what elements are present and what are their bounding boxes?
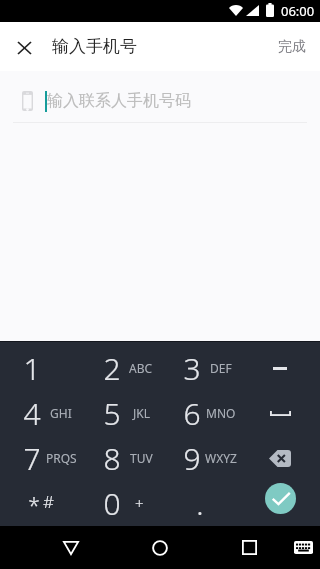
staticText: PRQS <box>46 450 77 466</box>
staticText: GHI <box>50 405 72 421</box>
button[interactable]: 8 <box>80 436 160 481</box>
staticText: 9 <box>183 438 201 479</box>
staticText: DEF <box>210 360 232 376</box>
other: Backspace <box>269 450 291 467</box>
button[interactable]: 5 <box>80 391 160 436</box>
button[interactable]: 9 <box>160 436 240 481</box>
staticText: 输入手机号 <box>52 36 137 57</box>
button[interactable]: Recents <box>225 526 273 569</box>
staticText: 5 <box>103 393 121 434</box>
staticText: 完成 <box>278 38 306 56</box>
staticText: . <box>196 483 204 524</box>
button[interactable]: 3 <box>160 346 240 391</box>
staticText: MNO <box>206 405 236 421</box>
staticText: 1 <box>23 348 41 389</box>
button[interactable]: Confirm <box>265 483 296 514</box>
staticText: ABC <box>129 360 153 376</box>
button[interactable]: 1 <box>0 346 80 391</box>
staticText: 输入联系人手机号码 <box>47 91 191 111</box>
staticText: WXYZ <box>205 450 237 466</box>
button[interactable]: 完成 <box>264 22 320 71</box>
button[interactable]: Backspace <box>240 436 320 481</box>
staticText: JKL <box>133 405 150 421</box>
button[interactable]: Home <box>136 526 184 569</box>
button[interactable]: 7 <box>0 436 80 481</box>
button[interactable]: Back <box>47 526 95 569</box>
staticText: 4 <box>23 393 41 434</box>
button[interactable]: Close <box>0 22 49 71</box>
button[interactable]: Confirm <box>240 481 320 526</box>
staticText: 6 <box>183 393 201 434</box>
button[interactable]: 2 <box>80 346 160 391</box>
staticText: 7 <box>23 438 41 479</box>
staticText: 06:00 <box>281 2 315 20</box>
button[interactable]: 6 <box>160 391 240 436</box>
button[interactable] <box>240 346 320 391</box>
button[interactable]: Keyboard <box>286 526 320 569</box>
button[interactable]: * <box>0 481 80 526</box>
staticText: 8 <box>103 438 121 479</box>
staticText: * <box>28 491 40 520</box>
staticText: 0 <box>103 483 121 524</box>
staticText: # <box>43 490 54 513</box>
staticText: 2 <box>103 348 121 389</box>
staticText: 3 <box>183 348 201 389</box>
button[interactable]: 0 <box>80 481 160 526</box>
staticText: + <box>135 493 144 513</box>
button[interactable]: 4 <box>0 391 80 436</box>
button[interactable]: . <box>160 481 240 526</box>
staticText: TUV <box>130 450 153 466</box>
button[interactable] <box>240 391 320 436</box>
